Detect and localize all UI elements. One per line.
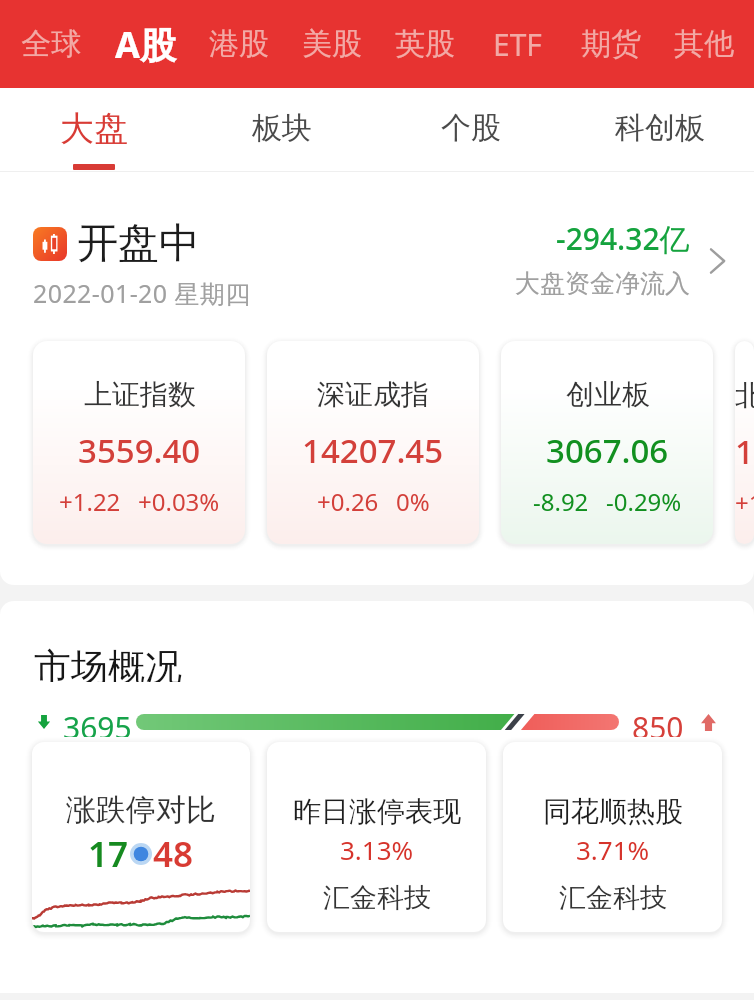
button[interactable]: 美股 xyxy=(285,0,378,88)
button[interactable]: 全球 xyxy=(4,0,98,88)
staticText: 1005.21 xyxy=(735,429,754,474)
staticText: 创业板 xyxy=(566,377,650,412)
button[interactable]: 同花顺热股 xyxy=(503,742,722,932)
staticText: 涨跌停对比 xyxy=(66,791,216,829)
button[interactable]: 期货 xyxy=(564,0,657,88)
staticText: 开盘中 xyxy=(77,218,200,270)
staticText: +1.22 xyxy=(59,485,121,518)
button[interactable]: 大盘 xyxy=(0,88,188,172)
staticText: 17 xyxy=(88,830,129,878)
staticText: -8.92 xyxy=(533,485,589,518)
button[interactable]: 北证50 xyxy=(735,341,754,544)
button[interactable]: ETF xyxy=(471,0,564,88)
staticText: 汇金科技 xyxy=(559,881,667,915)
staticText: 3067.06 xyxy=(546,428,669,473)
staticText: 期货 xyxy=(581,25,641,63)
staticText: 美股 xyxy=(302,25,362,63)
staticText: 英股 xyxy=(395,25,455,63)
staticText: -0.29% xyxy=(606,485,682,518)
button[interactable]: More details xyxy=(702,246,732,276)
staticText: 2022-01-20 星期四 xyxy=(33,276,251,310)
button[interactable]: 昨日涨停表现 xyxy=(267,742,486,932)
staticText: 板块 xyxy=(252,109,312,147)
staticText: 同花顺热股 xyxy=(543,794,683,829)
button[interactable]: 开盘中 xyxy=(33,218,732,310)
button[interactable]: 其他 xyxy=(657,0,750,88)
staticText: A股 xyxy=(115,20,176,69)
staticText: -294.32亿 xyxy=(556,218,690,259)
staticText: 3695 xyxy=(63,707,132,737)
button[interactable]: 板块 xyxy=(188,88,376,172)
staticText: ETF xyxy=(493,24,542,65)
staticText: 上证指数 xyxy=(84,377,196,412)
button[interactable]: 深证成指 xyxy=(267,341,479,544)
staticText: 3.71% xyxy=(576,832,650,867)
button[interactable]: 上证指数 xyxy=(33,341,245,544)
button[interactable]: 英股 xyxy=(378,0,471,88)
staticText: 3.13% xyxy=(340,832,414,867)
button[interactable]: A股 xyxy=(98,0,192,88)
staticText: 深证成指 xyxy=(317,377,429,412)
staticText: 北证50 xyxy=(735,375,754,413)
staticText: 汇金科技 xyxy=(323,881,431,915)
staticText: 0% xyxy=(396,485,430,518)
staticText: 市场概况 xyxy=(34,644,182,682)
staticText: +0.03% xyxy=(138,485,220,518)
staticText: 大盘 xyxy=(60,107,128,150)
staticText: 大盘资金净流入 xyxy=(515,268,690,299)
button[interactable]: 科创板 xyxy=(565,88,754,172)
button[interactable]: 涨跌停对比 xyxy=(32,742,250,932)
button[interactable]: 个股 xyxy=(376,88,565,172)
staticText: 科创板 xyxy=(615,109,705,147)
staticText: 港股 xyxy=(209,25,269,63)
button[interactable]: 创业板 xyxy=(501,341,713,544)
staticText: 全球 xyxy=(21,25,81,63)
staticText: +1.30 xyxy=(735,486,754,519)
staticText: 850 xyxy=(632,707,684,737)
staticText: 个股 xyxy=(441,109,501,147)
button[interactable]: 港股 xyxy=(192,0,285,88)
staticText: 48 xyxy=(153,830,194,878)
staticText: 其他 xyxy=(674,25,734,63)
staticText: +0.26 xyxy=(317,485,379,518)
staticText: 昨日涨停表现 xyxy=(293,794,461,829)
staticText: 14207.45 xyxy=(302,428,444,473)
staticText: 3559.40 xyxy=(78,428,201,473)
